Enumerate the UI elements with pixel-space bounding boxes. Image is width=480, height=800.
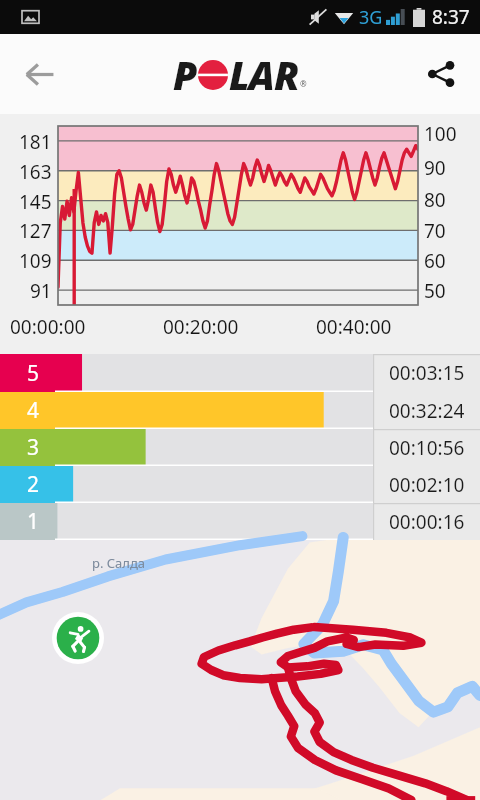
button[interactable]: Back <box>12 47 66 101</box>
staticText: 00:02:10 <box>389 472 465 498</box>
staticText: 8:37 <box>432 4 470 30</box>
staticText: 00:00:16 <box>389 509 465 535</box>
button[interactable]: 4 <box>0 392 480 429</box>
staticText: 00:32:24 <box>389 398 465 424</box>
staticText: 00:00:00 <box>10 314 86 340</box>
staticText: LAR <box>229 48 299 101</box>
button[interactable]: 1 <box>0 503 480 540</box>
staticText: 00:20:00 <box>163 314 239 340</box>
staticText: 145 <box>19 189 52 213</box>
staticText: 3G <box>359 5 383 30</box>
staticText: 91 <box>30 278 52 302</box>
staticText: 109 <box>19 248 52 272</box>
staticText: ® <box>300 78 307 89</box>
staticText: 60 <box>424 248 446 272</box>
staticText: 127 <box>19 218 52 242</box>
staticText: P <box>173 48 197 101</box>
staticText: 00:03:15 <box>389 360 465 386</box>
staticText: 2 <box>16 470 39 499</box>
button[interactable]: 3 <box>0 429 480 466</box>
staticText: 181 <box>19 129 52 153</box>
staticText: 4 <box>16 396 39 425</box>
staticText: 70 <box>424 218 446 242</box>
staticText: 50 <box>424 278 446 302</box>
button[interactable]: 5 <box>0 354 480 392</box>
staticText: 00:10:56 <box>389 435 465 461</box>
button[interactable]: Start location <box>52 612 104 664</box>
staticText: 1 <box>16 507 39 536</box>
staticText: 163 <box>19 159 52 183</box>
button[interactable]: 2 <box>0 466 480 503</box>
staticText: 90 <box>424 155 446 179</box>
staticText: 100 <box>424 121 457 145</box>
staticText: р. Салда <box>92 554 146 572</box>
button[interactable]: Share <box>414 47 468 101</box>
staticText: 00:40:00 <box>316 314 392 340</box>
staticText: 3 <box>16 433 39 462</box>
staticText: 80 <box>424 187 446 211</box>
staticText: 5 <box>16 359 39 388</box>
